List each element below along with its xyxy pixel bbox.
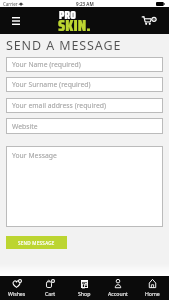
staticText: SEND MESSAGE — [18, 240, 55, 246]
staticText: SKIN. — [58, 13, 91, 38]
staticText: Website — [12, 122, 38, 131]
button[interactable]: Your email address (required) — [6, 98, 163, 113]
staticText: Shop — [78, 290, 91, 297]
button[interactable]: Menu — [6, 11, 26, 30]
staticText: Carrier — [3, 1, 18, 7]
staticText: Home — [145, 290, 160, 297]
staticText: PRO — [59, 7, 77, 24]
button[interactable]: Shop — [67, 276, 101, 300]
button[interactable]: Your Name (required) — [6, 57, 163, 72]
staticText: Your email address (required) — [12, 101, 107, 110]
staticText: Cart — [45, 290, 56, 297]
staticText: 9:23 AM — [76, 1, 94, 7]
staticText: Account — [108, 290, 128, 297]
button[interactable]: Your Surname (required) — [6, 77, 163, 92]
staticText: Your Surname (required) — [12, 80, 91, 89]
button[interactable]: Cart — [139, 11, 161, 30]
staticText: SEND A MESSAGE — [6, 37, 122, 54]
staticText: Your Message — [12, 151, 57, 160]
button[interactable]: Home — [135, 276, 169, 300]
button[interactable]: Account — [101, 276, 135, 300]
staticText: Wishes — [8, 290, 26, 297]
button[interactable]: Wishes — [0, 276, 33, 300]
button[interactable]: Your Message — [6, 146, 163, 227]
button[interactable]: Cart — [33, 276, 67, 300]
button[interactable]: Website — [6, 118, 163, 134]
button[interactable]: SEND MESSAGE — [6, 236, 67, 249]
staticText: Your Name (required) — [12, 60, 81, 69]
